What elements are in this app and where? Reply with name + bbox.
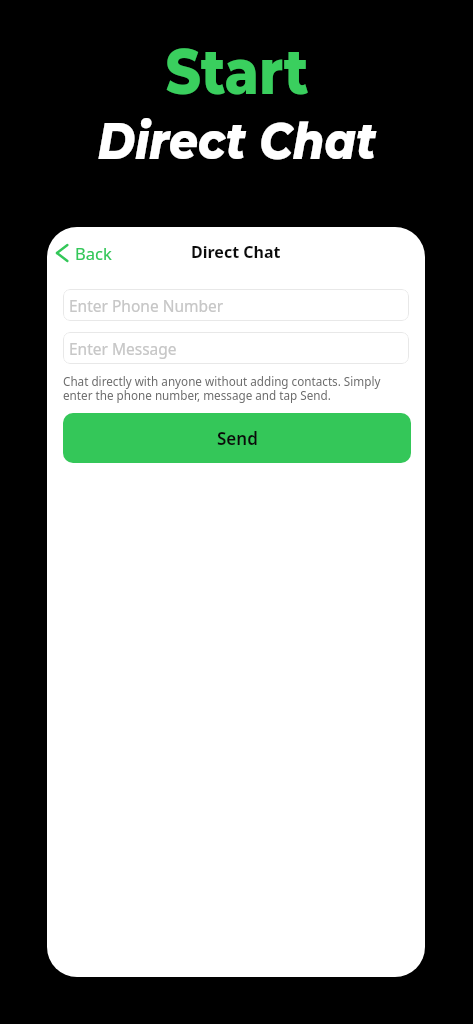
staticText: Direct Chat [98, 110, 376, 172]
button[interactable]: Enter Message [63, 332, 409, 364]
staticText: Direct Chat [191, 241, 281, 263]
button[interactable]: Send [63, 413, 411, 463]
staticText: Start [165, 32, 309, 110]
staticText: Back [75, 242, 112, 264]
staticText: Send [217, 427, 258, 450]
staticText: Enter Phone Number [69, 295, 224, 316]
staticText: Chat directly with anyone without adding… [63, 373, 409, 404]
staticText: Enter Message [69, 338, 177, 359]
button[interactable]: Back [53, 242, 112, 264]
button[interactable]: Enter Phone Number [63, 289, 409, 321]
